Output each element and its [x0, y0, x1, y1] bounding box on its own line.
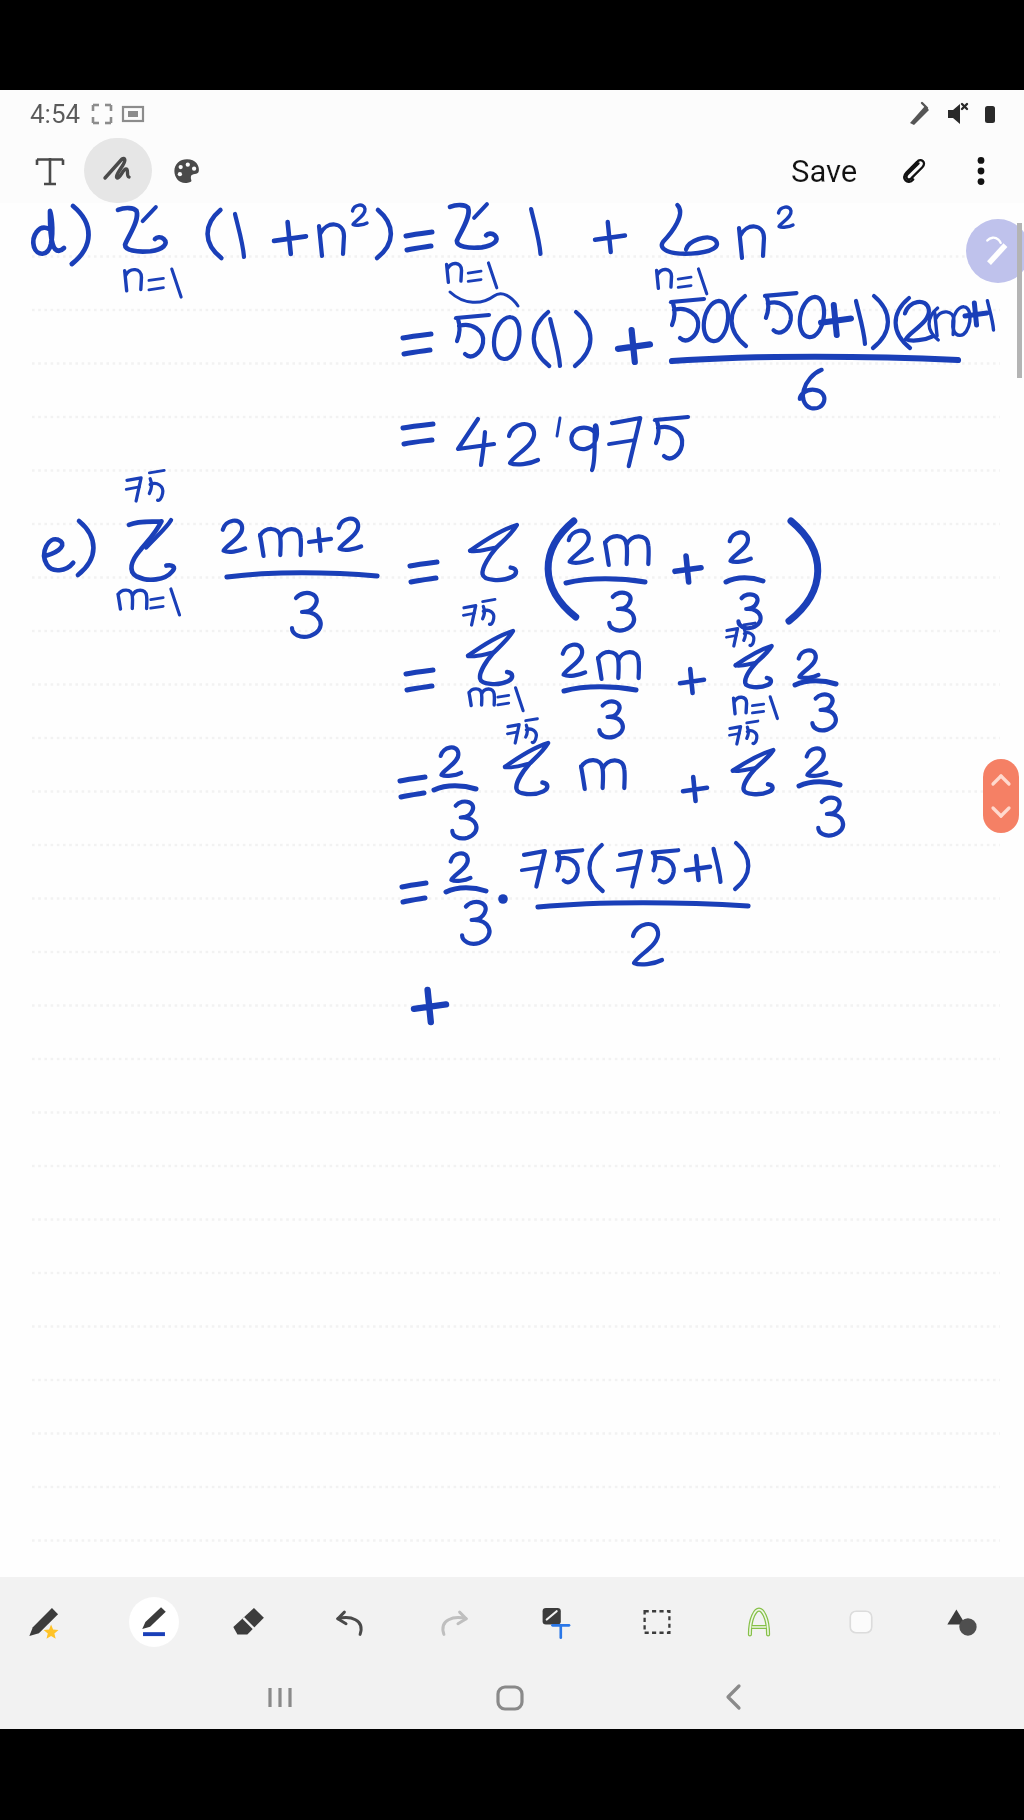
button[interactable]: Favourite pen: [13, 1590, 77, 1654]
button[interactable]: Pen: [129, 1597, 179, 1647]
button[interactable]: Back: [675, 1665, 795, 1729]
button[interactable]: Jump to next: [983, 759, 1019, 833]
button[interactable]: Undo: [319, 1590, 383, 1654]
staticText: Save: [791, 153, 858, 189]
button[interactable]: Home: [450, 1665, 570, 1729]
button[interactable]: Pen settings: [966, 219, 1024, 283]
button[interactable]: Select: [625, 1590, 689, 1654]
button[interactable]: Save: [781, 145, 868, 197]
button[interactable]: Handwriting mode: [84, 138, 152, 203]
button[interactable]: Redo: [421, 1590, 485, 1654]
button[interactable]: Shape: [829, 1590, 893, 1654]
button[interactable]: More options: [956, 146, 1006, 196]
button[interactable]: Palette: [154, 138, 220, 203]
button[interactable]: Shapes: [931, 1590, 995, 1654]
button[interactable]: Highlight: [727, 1590, 791, 1654]
button[interactable]: Recents: [224, 1665, 344, 1729]
staticText: 4:54: [30, 99, 81, 129]
button[interactable]: Attach: [886, 143, 942, 199]
button[interactable]: Convert to text: [523, 1590, 587, 1654]
button[interactable]: Eraser: [217, 1590, 281, 1654]
button[interactable]: Text mode: [16, 138, 84, 203]
